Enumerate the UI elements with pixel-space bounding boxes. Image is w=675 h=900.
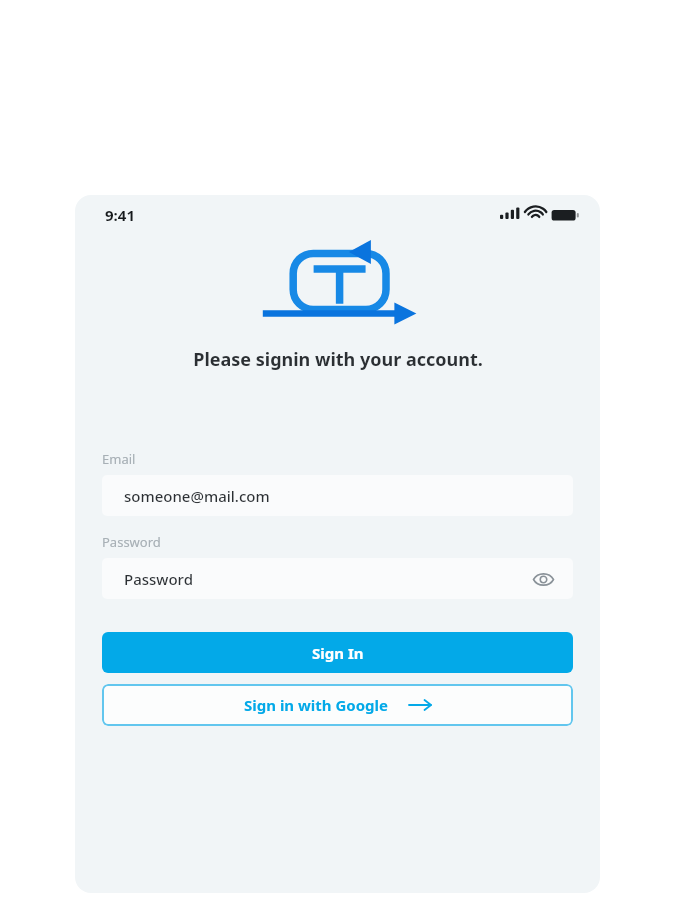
staticText: Password [124,569,193,589]
staticText: Please signin with your account. [193,347,483,372]
staticText: Email [102,450,136,468]
staticText: Sign In [312,643,364,663]
staticText: someone@mail.com [124,486,270,506]
button[interactable]: Show password [529,565,557,593]
button[interactable]: Sign in with Google [102,684,573,726]
button[interactable]: someone@mail.com [102,475,573,516]
staticText: 9:41 [105,205,135,225]
staticText: Password [102,533,161,551]
button[interactable]: Password [102,558,573,599]
button[interactable]: Sign In [102,632,573,673]
staticText: Sign in with Google [244,695,389,715]
